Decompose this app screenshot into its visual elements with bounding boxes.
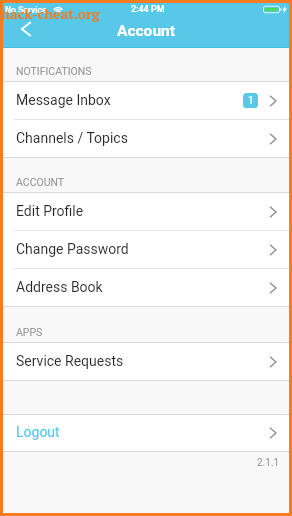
button[interactable]: Change Password	[3, 231, 289, 268]
staticText: Change Password	[16, 241, 129, 257]
staticText: 2.1.1	[257, 457, 280, 469]
button[interactable]: Channels / Topics	[3, 120, 289, 157]
staticText: NOTIFICATIONS	[16, 65, 92, 77]
button[interactable]: Edit Profile	[3, 193, 289, 230]
button[interactable]: Back	[3, 17, 43, 45]
button[interactable]: Address Book	[3, 269, 289, 306]
staticText: Service Requests	[16, 353, 124, 369]
staticText: hack-cheat.org	[1, 5, 100, 23]
staticText: Channels / Topics	[16, 130, 128, 146]
button[interactable]: Service Requests	[3, 343, 289, 380]
staticText: 1	[248, 95, 254, 107]
staticText: No Service	[5, 5, 47, 15]
staticText: ACCOUNT	[16, 176, 65, 188]
staticText: Logout	[16, 424, 60, 440]
button[interactable]: Logout	[3, 415, 289, 451]
staticText: Message Inbox	[16, 92, 111, 108]
staticText: 2:44 PM	[131, 4, 165, 15]
staticText: Address Book	[16, 279, 103, 295]
staticText: Account	[117, 22, 175, 40]
staticText: Edit Profile	[16, 203, 84, 219]
staticText: APPS	[16, 326, 43, 338]
button[interactable]: Message Inbox	[3, 82, 289, 119]
